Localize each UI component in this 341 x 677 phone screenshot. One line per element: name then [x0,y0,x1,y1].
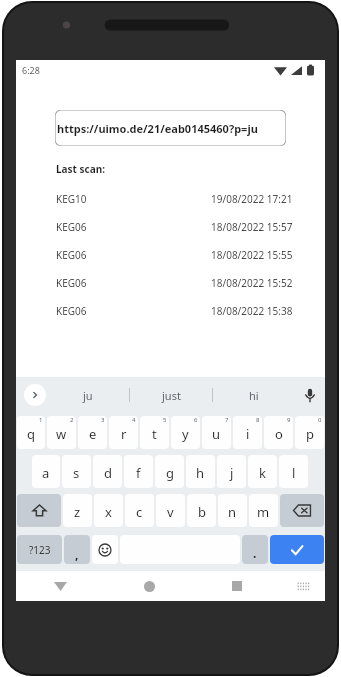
button[interactable]: m [249,494,278,527]
staticText: 18/08/2022 15:52 [211,276,293,290]
staticText: KEG06 [56,276,87,290]
button[interactable]: l [279,455,308,488]
staticText: 19/08/2022 17:21 [211,192,293,206]
staticText: 3 [101,416,105,424]
staticText: KEG06 [56,304,87,318]
staticText: 6 [194,416,198,424]
staticText: r [121,425,127,443]
staticText: 18/08/2022 15:38 [211,304,293,318]
button[interactable]: s [62,455,91,488]
staticText: 18/08/2022 15:55 [211,248,293,262]
staticText: KEG06 [56,248,87,262]
button[interactable]: h [186,455,215,488]
staticText: e [89,425,97,443]
staticText: t [152,425,157,443]
button[interactable]: . [242,535,268,564]
staticText: KEG06 [56,220,87,234]
staticText: z [74,503,81,521]
button[interactable]: , [64,535,90,564]
staticText: v [167,503,174,521]
button[interactable]: f [124,455,153,488]
staticText: s [73,464,80,482]
button[interactable] [270,535,324,564]
staticText: KEG10 [56,192,87,206]
button[interactable]: KEG06 [56,297,293,325]
staticText: 2 [70,416,74,424]
button[interactable]: Shift [17,494,61,527]
button[interactable]: r [109,416,138,449]
button[interactable]: Home [105,571,193,601]
button[interactable]: a [32,455,60,488]
staticText: hi [249,388,259,403]
button[interactable]: b [187,494,216,527]
button[interactable]: Switch keyboard [281,571,325,601]
button[interactable]: Recent apps [193,571,281,601]
staticText: 0 [318,416,322,424]
staticText: x [105,503,112,521]
button[interactable]: KEG06 [56,213,293,241]
staticText: 1 [39,416,43,424]
staticText: q [27,425,35,443]
staticText: 9 [287,416,291,424]
button[interactable]: w [47,416,76,449]
staticText: , [75,546,79,562]
button[interactable]: n [218,494,247,527]
button[interactable]: hi [213,377,295,413]
button[interactable]: https://uimo.de/21/eab0145460?p=ju [55,110,286,146]
staticText: ?123 [29,543,51,557]
button[interactable]: More suggestions [24,384,46,406]
staticText: a [42,464,50,482]
staticText: c [136,503,143,521]
staticText: u [212,425,221,443]
staticText: j [230,464,234,482]
button[interactable]: i [233,416,262,449]
staticText: f [136,464,141,482]
button[interactable]: p [295,416,324,449]
staticText: ju [83,388,93,403]
button[interactable]: e [78,416,107,449]
staticText: 4 [132,416,136,424]
staticText: 7 [225,416,229,424]
button[interactable]: KEG06 [56,269,293,297]
button[interactable]: ?123 [17,535,62,564]
staticText: just [162,388,181,403]
button[interactable]: j [217,455,246,488]
staticText: o [275,425,283,443]
button[interactable]: u [202,416,231,449]
button[interactable]: z [63,494,92,527]
button[interactable]: o [264,416,293,449]
staticText: 6:28 [22,64,40,76]
button[interactable] [92,535,118,564]
staticText: y [182,425,189,443]
button[interactable]: q [17,416,45,449]
staticText: p [306,425,314,443]
staticText: https://uimo.de/21/eab0145460?p=ju [57,121,258,136]
button[interactable]: t [140,416,169,449]
button[interactable]: x [94,494,123,527]
button[interactable]: KEG06 [56,241,293,269]
staticText: h [196,464,205,482]
button[interactable]: c [125,494,154,527]
button[interactable]: g [155,455,184,488]
staticText: k [259,464,266,482]
staticText: i [246,425,250,443]
button[interactable]: k [248,455,277,488]
button[interactable]: ju [46,377,129,413]
button[interactable]: just [130,377,212,413]
button[interactable]: Voice input [295,377,325,413]
staticText: n [228,503,237,521]
staticText: . [253,545,257,561]
button[interactable]: KEG10 [56,185,293,213]
staticText: b [198,503,206,521]
button[interactable]: v [156,494,185,527]
staticText: Last scan: [56,162,106,176]
button[interactable]: y [171,416,200,449]
button[interactable]: Back [16,571,105,601]
button[interactable]: Backspace [280,494,324,527]
staticText: g [166,464,174,482]
staticText: 5 [163,416,167,424]
staticText: l [292,464,296,482]
staticText: 18/08/2022 15:57 [211,220,293,234]
button[interactable]: d [93,455,122,488]
